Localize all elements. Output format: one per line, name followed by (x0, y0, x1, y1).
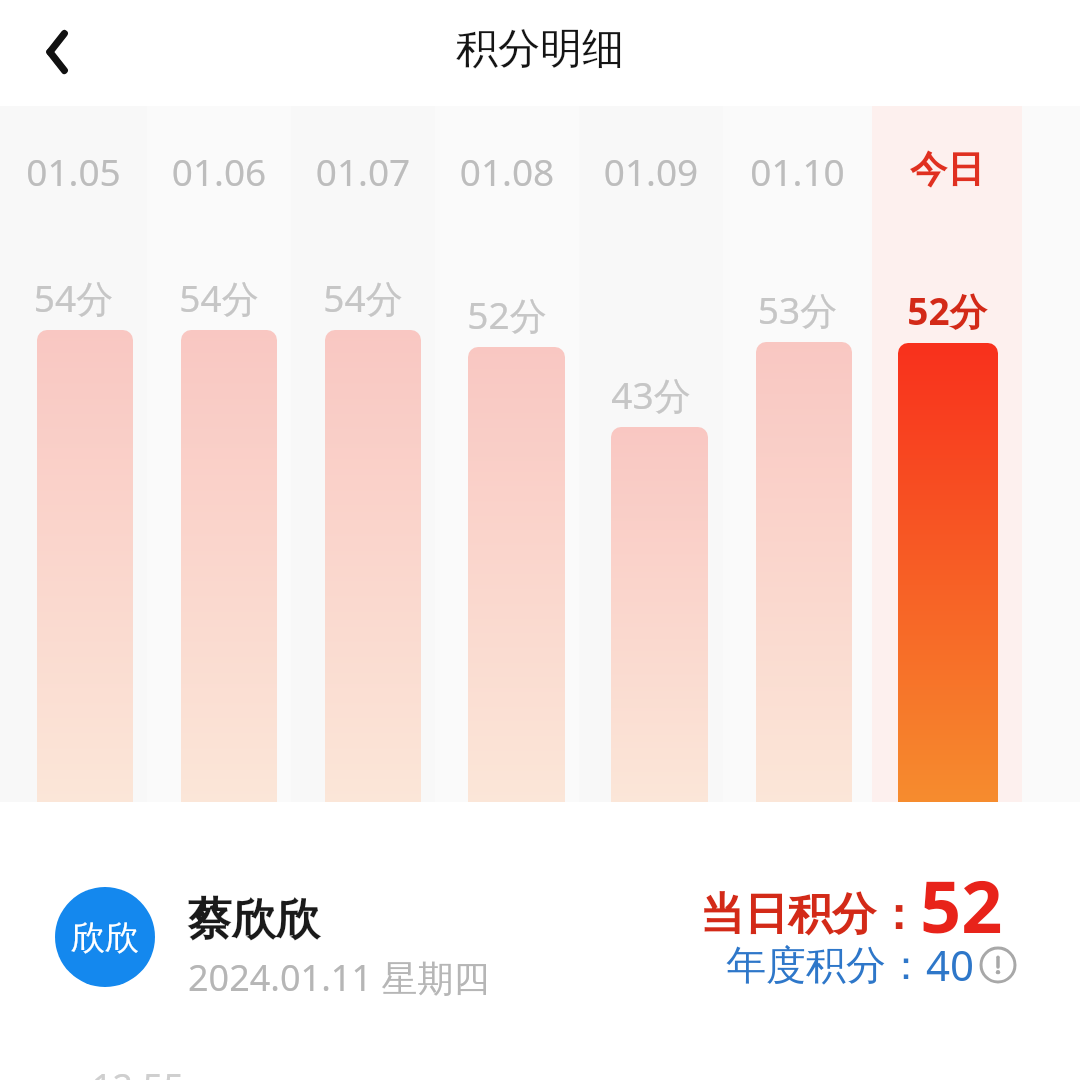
staticText: 52 (920, 856, 1003, 954)
button[interactable]: 当日积分： (700, 856, 1003, 954)
staticText: 52分 (872, 285, 1022, 336)
staticText: 01.07 (291, 146, 435, 196)
staticText: 今日 (872, 146, 1022, 193)
button[interactable] (898, 343, 998, 802)
button[interactable] (756, 342, 852, 802)
staticText: 43分 (579, 369, 723, 420)
button[interactable]: 返回 (16, 8, 104, 96)
button[interactable] (468, 347, 565, 802)
staticText: 54分 (147, 272, 291, 323)
staticText: 54分 (0, 272, 147, 323)
staticText: 52分 (435, 289, 579, 340)
staticText: 40 (926, 936, 975, 993)
staticText: 积分明细 (456, 23, 624, 76)
staticText: 01.05 (0, 146, 147, 196)
staticText: 01.06 (147, 146, 291, 196)
button[interactable]: 用户头像 (55, 887, 155, 987)
button[interactable]: 年度积分： (726, 936, 1017, 993)
staticText: 12:55 (92, 1062, 185, 1080)
staticText: 01.09 (579, 146, 723, 196)
staticText: 01.08 (435, 146, 579, 196)
button[interactable] (181, 330, 277, 802)
button[interactable] (611, 427, 708, 802)
button[interactable] (37, 330, 133, 802)
staticText: 欣欣 (71, 916, 139, 959)
staticText: 53分 (723, 284, 872, 335)
button[interactable]: 说明 (979, 946, 1017, 984)
staticText: 2024.01.11 星期四 (188, 953, 490, 1002)
staticText: 54分 (291, 272, 435, 323)
staticText: 蔡欣欣 (188, 892, 320, 947)
staticText: 01.10 (723, 146, 872, 196)
staticText: 当日积分： (700, 887, 920, 942)
staticText: 年度积分： (726, 940, 926, 990)
button[interactable] (325, 330, 421, 802)
